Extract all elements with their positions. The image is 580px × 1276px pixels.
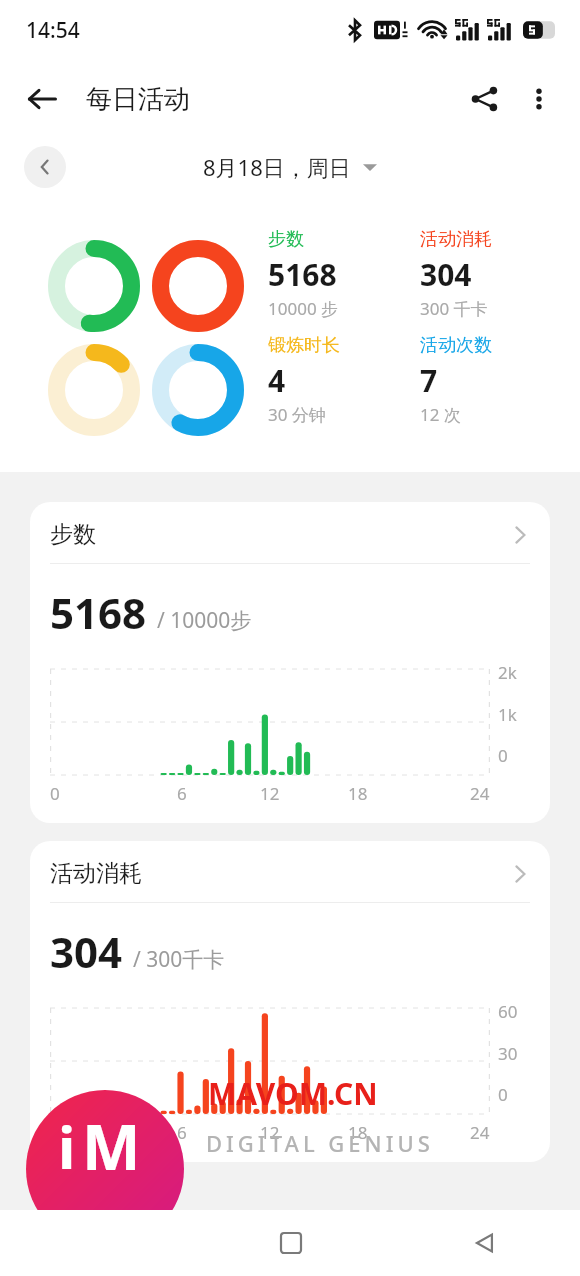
staticText: 300 千卡 — [420, 297, 488, 320]
staticText: 6 — [177, 1121, 187, 1144]
button[interactable]: Home — [194, 1210, 387, 1276]
staticText: 12 — [260, 1121, 280, 1144]
staticText: 0 — [498, 744, 508, 767]
button[interactable]: Share — [458, 72, 512, 126]
staticText: 5168 — [50, 584, 147, 641]
staticText: 步数 — [268, 228, 304, 251]
staticText: 6 — [177, 782, 187, 805]
staticText: 304 — [50, 923, 123, 980]
staticText: 7 — [420, 360, 438, 401]
staticText: 1k — [498, 703, 517, 726]
staticText: 锻炼时长 — [268, 334, 340, 357]
staticText: 60 — [498, 1000, 518, 1023]
button[interactable]: 锻炼时长 — [268, 334, 420, 426]
staticText: 5168 — [268, 254, 337, 295]
staticText: 24 — [470, 1121, 490, 1144]
staticText: 30 分钟 — [268, 403, 326, 426]
staticText: 步数 — [50, 520, 510, 549]
staticText: 活动消耗 — [420, 228, 492, 251]
staticText: 12 — [260, 782, 280, 805]
staticText: / 300千卡 — [133, 945, 225, 974]
staticText: 0 — [498, 1083, 508, 1106]
staticText: 8月18日，周日 — [203, 152, 351, 182]
staticText: / 10000步 — [157, 606, 252, 635]
button[interactable]: 步数 — [268, 228, 420, 320]
staticText: 2k — [498, 661, 517, 684]
button[interactable]: Back — [14, 71, 70, 127]
staticText: 活动消耗 — [50, 859, 510, 888]
button[interactable]: 活动次数 — [420, 334, 572, 426]
button[interactable]: Previous day — [24, 146, 66, 188]
staticText: MAVOM.CN — [208, 1073, 378, 1114]
staticText: 304 — [420, 254, 472, 295]
staticText: i — [58, 1107, 76, 1186]
staticText: 10000 步 — [268, 297, 339, 320]
staticText: M — [82, 1104, 141, 1188]
staticText: 每日活动 — [86, 83, 190, 116]
staticText: 24 — [470, 782, 490, 805]
staticText: 0 — [50, 782, 60, 805]
staticText: 18 — [348, 1121, 368, 1144]
staticText: 12 次 — [420, 403, 461, 426]
button[interactable]: 活动消耗 — [420, 228, 572, 320]
button[interactable]: 活动消耗 — [30, 841, 550, 1162]
button[interactable]: 8月18日，周日 — [197, 148, 383, 186]
button[interactable]: More options — [512, 72, 566, 126]
staticText: 4 — [268, 360, 286, 401]
staticText: DIGITAL GENIUS — [206, 1128, 434, 1158]
staticText: 30 — [498, 1042, 518, 1065]
staticText: 14:54 — [26, 16, 80, 45]
staticText: 18 — [348, 782, 368, 805]
button[interactable]: 步数 — [30, 502, 550, 823]
staticText: 活动次数 — [420, 334, 492, 357]
button[interactable]: Back — [387, 1210, 580, 1276]
